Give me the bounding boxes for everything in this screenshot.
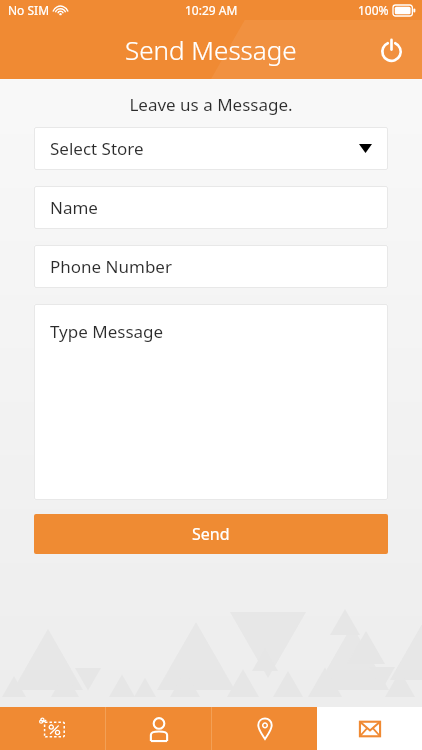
staticText: Send	[192, 523, 230, 545]
staticText: Select Store	[50, 137, 144, 160]
button[interactable]: Profile	[106, 707, 211, 750]
staticText: 10:29 AM	[185, 2, 238, 18]
button[interactable]: Messages	[317, 707, 422, 750]
button[interactable]: Log out	[368, 27, 414, 73]
staticText: Name	[50, 196, 98, 219]
button[interactable]: Coupons	[0, 707, 105, 750]
button[interactable]: Type Message	[34, 304, 388, 500]
staticText: Type Message	[50, 320, 164, 343]
button[interactable]: Select Store	[34, 127, 388, 170]
staticText: Leave us a Message.	[0, 93, 422, 116]
staticText: Phone Number	[50, 255, 172, 278]
button[interactable]: Locations	[212, 707, 317, 750]
staticText: No SIM	[8, 2, 50, 18]
staticText: 100%	[358, 2, 389, 18]
staticText: Send Message	[125, 32, 297, 67]
button[interactable]: Send	[34, 514, 388, 554]
button[interactable]: Name	[34, 186, 388, 229]
button[interactable]: Phone Number	[34, 245, 388, 288]
